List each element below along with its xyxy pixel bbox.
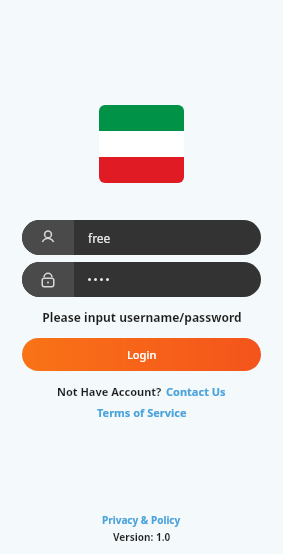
staticText: Contact Us [166,384,226,399]
staticText: Not Have Account? [57,384,162,399]
other: Password [22,262,74,297]
staticText: Login [127,347,157,362]
staticText: Privacy & Policy [102,513,181,527]
button[interactable]: Username [22,220,261,255]
button[interactable]: Contact Us [166,384,226,399]
staticText: Terms of Service [97,405,187,420]
staticText: Version: 1.0 [113,530,171,544]
button[interactable]: Privacy & Policy [102,513,181,527]
button[interactable]: Terms of Service [97,405,187,420]
button[interactable]: Login [22,338,261,371]
other: Username [22,220,74,255]
button[interactable]: Password [22,262,261,297]
staticText: Please input username/password [42,309,242,325]
staticText: free [88,230,111,246]
